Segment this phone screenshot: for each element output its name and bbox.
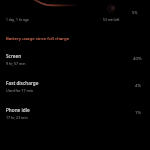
staticText: Battery usage since full charge — [6, 35, 70, 41]
staticText: 1 day, 1 hr ago — [6, 17, 29, 21]
staticText: 4% — [135, 82, 142, 88]
staticText: 1% — [135, 109, 142, 115]
staticText: 17 hr, 23 min — [6, 115, 28, 120]
staticText: Screen — [6, 53, 22, 59]
staticText: 40% — [133, 55, 142, 61]
staticText: Fast discharge — [6, 80, 39, 86]
button[interactable]: Screen — [0, 53, 150, 80]
staticText: 5% — [132, 10, 138, 15]
button[interactable]: Phone idle — [0, 107, 150, 134]
staticText: 9 hr, 57 min — [6, 61, 26, 66]
staticText: 53 min left — [103, 17, 120, 21]
staticText: Used for 17 min — [6, 88, 33, 93]
button[interactable]: Fast discharge — [0, 80, 150, 107]
staticText: Phone idle — [6, 107, 30, 113]
